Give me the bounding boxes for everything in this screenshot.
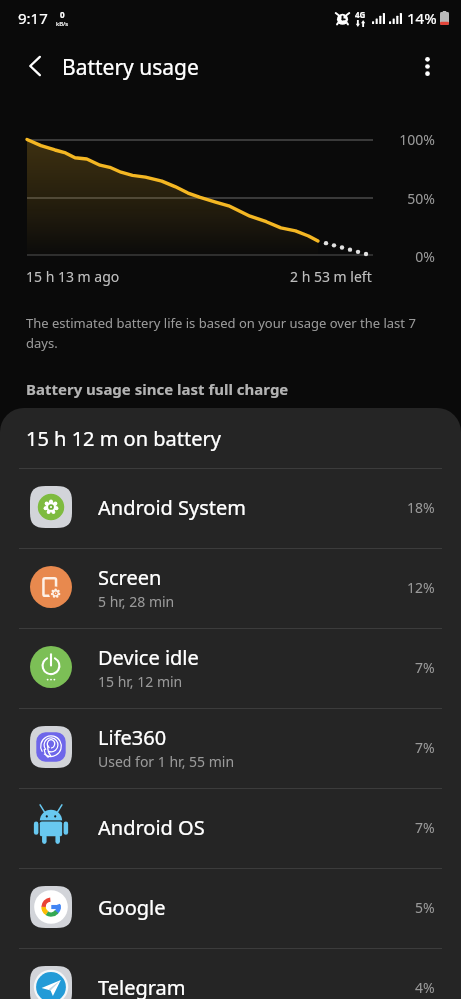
staticText: 50% <box>360 189 435 208</box>
staticText: 0 <box>60 9 65 20</box>
staticText: Used for 1 hr, 55 min <box>98 752 235 771</box>
staticText: 7% <box>415 818 435 837</box>
button[interactable]: Android OS <box>0 789 461 868</box>
button[interactable]: Life360 <box>0 709 461 788</box>
staticText: 15 hr, 12 min <box>98 672 183 691</box>
staticText: Screen <box>98 564 162 591</box>
staticText: 18% <box>407 498 435 517</box>
staticText: 4G <box>355 9 366 20</box>
staticText: The estimated battery life is based on y… <box>26 314 427 352</box>
button[interactable]: Back <box>16 44 56 84</box>
staticText: Android OS <box>98 814 205 841</box>
button[interactable]: Screen <box>0 549 461 628</box>
staticText: 4% <box>415 978 435 997</box>
staticText: 15 h 13 m ago <box>26 267 120 286</box>
button[interactable]: Android System <box>0 469 461 548</box>
staticText: 0% <box>360 247 435 266</box>
staticText: Device idle <box>98 644 199 671</box>
staticText: 7% <box>415 738 435 757</box>
staticText: 5 hr, 28 min <box>98 592 175 611</box>
staticText: Telegram <box>98 974 186 999</box>
staticText: Battery usage since last full charge <box>26 379 289 399</box>
staticText: Google <box>98 894 166 921</box>
button[interactable]: Device idle <box>0 629 461 708</box>
staticText: Android System <box>98 494 247 521</box>
staticText: 7% <box>415 658 435 677</box>
button[interactable]: More options <box>407 44 447 84</box>
staticText: 100% <box>360 130 435 149</box>
staticText: kB/s <box>56 20 69 28</box>
staticText: 14% <box>407 8 437 28</box>
button[interactable]: Google <box>0 869 461 948</box>
staticText: 9:17 <box>18 8 48 28</box>
staticText: Battery usage <box>62 53 199 82</box>
staticText: 15 h 12 m on battery <box>26 425 221 452</box>
staticText: 2 h 53 m left <box>290 267 372 286</box>
button[interactable]: Telegram <box>0 949 461 999</box>
staticText: 12% <box>407 578 435 597</box>
staticText: Life360 <box>98 724 167 751</box>
staticText: 5% <box>415 898 435 917</box>
